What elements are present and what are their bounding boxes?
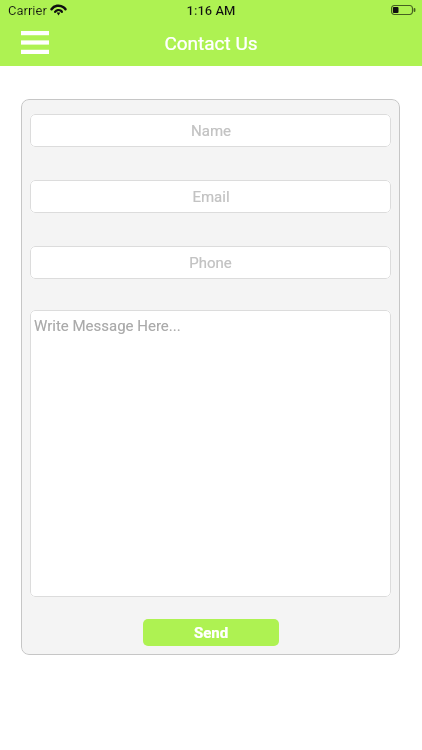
button[interactable]: Send	[143, 619, 279, 646]
button[interactable]: Name	[30, 114, 391, 147]
button[interactable]: Phone	[30, 246, 391, 279]
staticText: Write Message Here...	[34, 317, 181, 335]
staticText: Name	[191, 122, 231, 140]
staticText: Send	[194, 624, 229, 642]
button[interactable]: Open navigation menu	[21, 31, 49, 54]
button[interactable]: Email	[30, 180, 391, 213]
staticText: Carrier	[8, 3, 47, 18]
staticText: Contact Us	[0, 32, 422, 54]
staticText: Email	[192, 188, 230, 206]
button[interactable]: Write Message Here...	[30, 310, 391, 597]
staticText: 1:16 AM	[0, 3, 422, 18]
staticText: Phone	[189, 254, 232, 272]
